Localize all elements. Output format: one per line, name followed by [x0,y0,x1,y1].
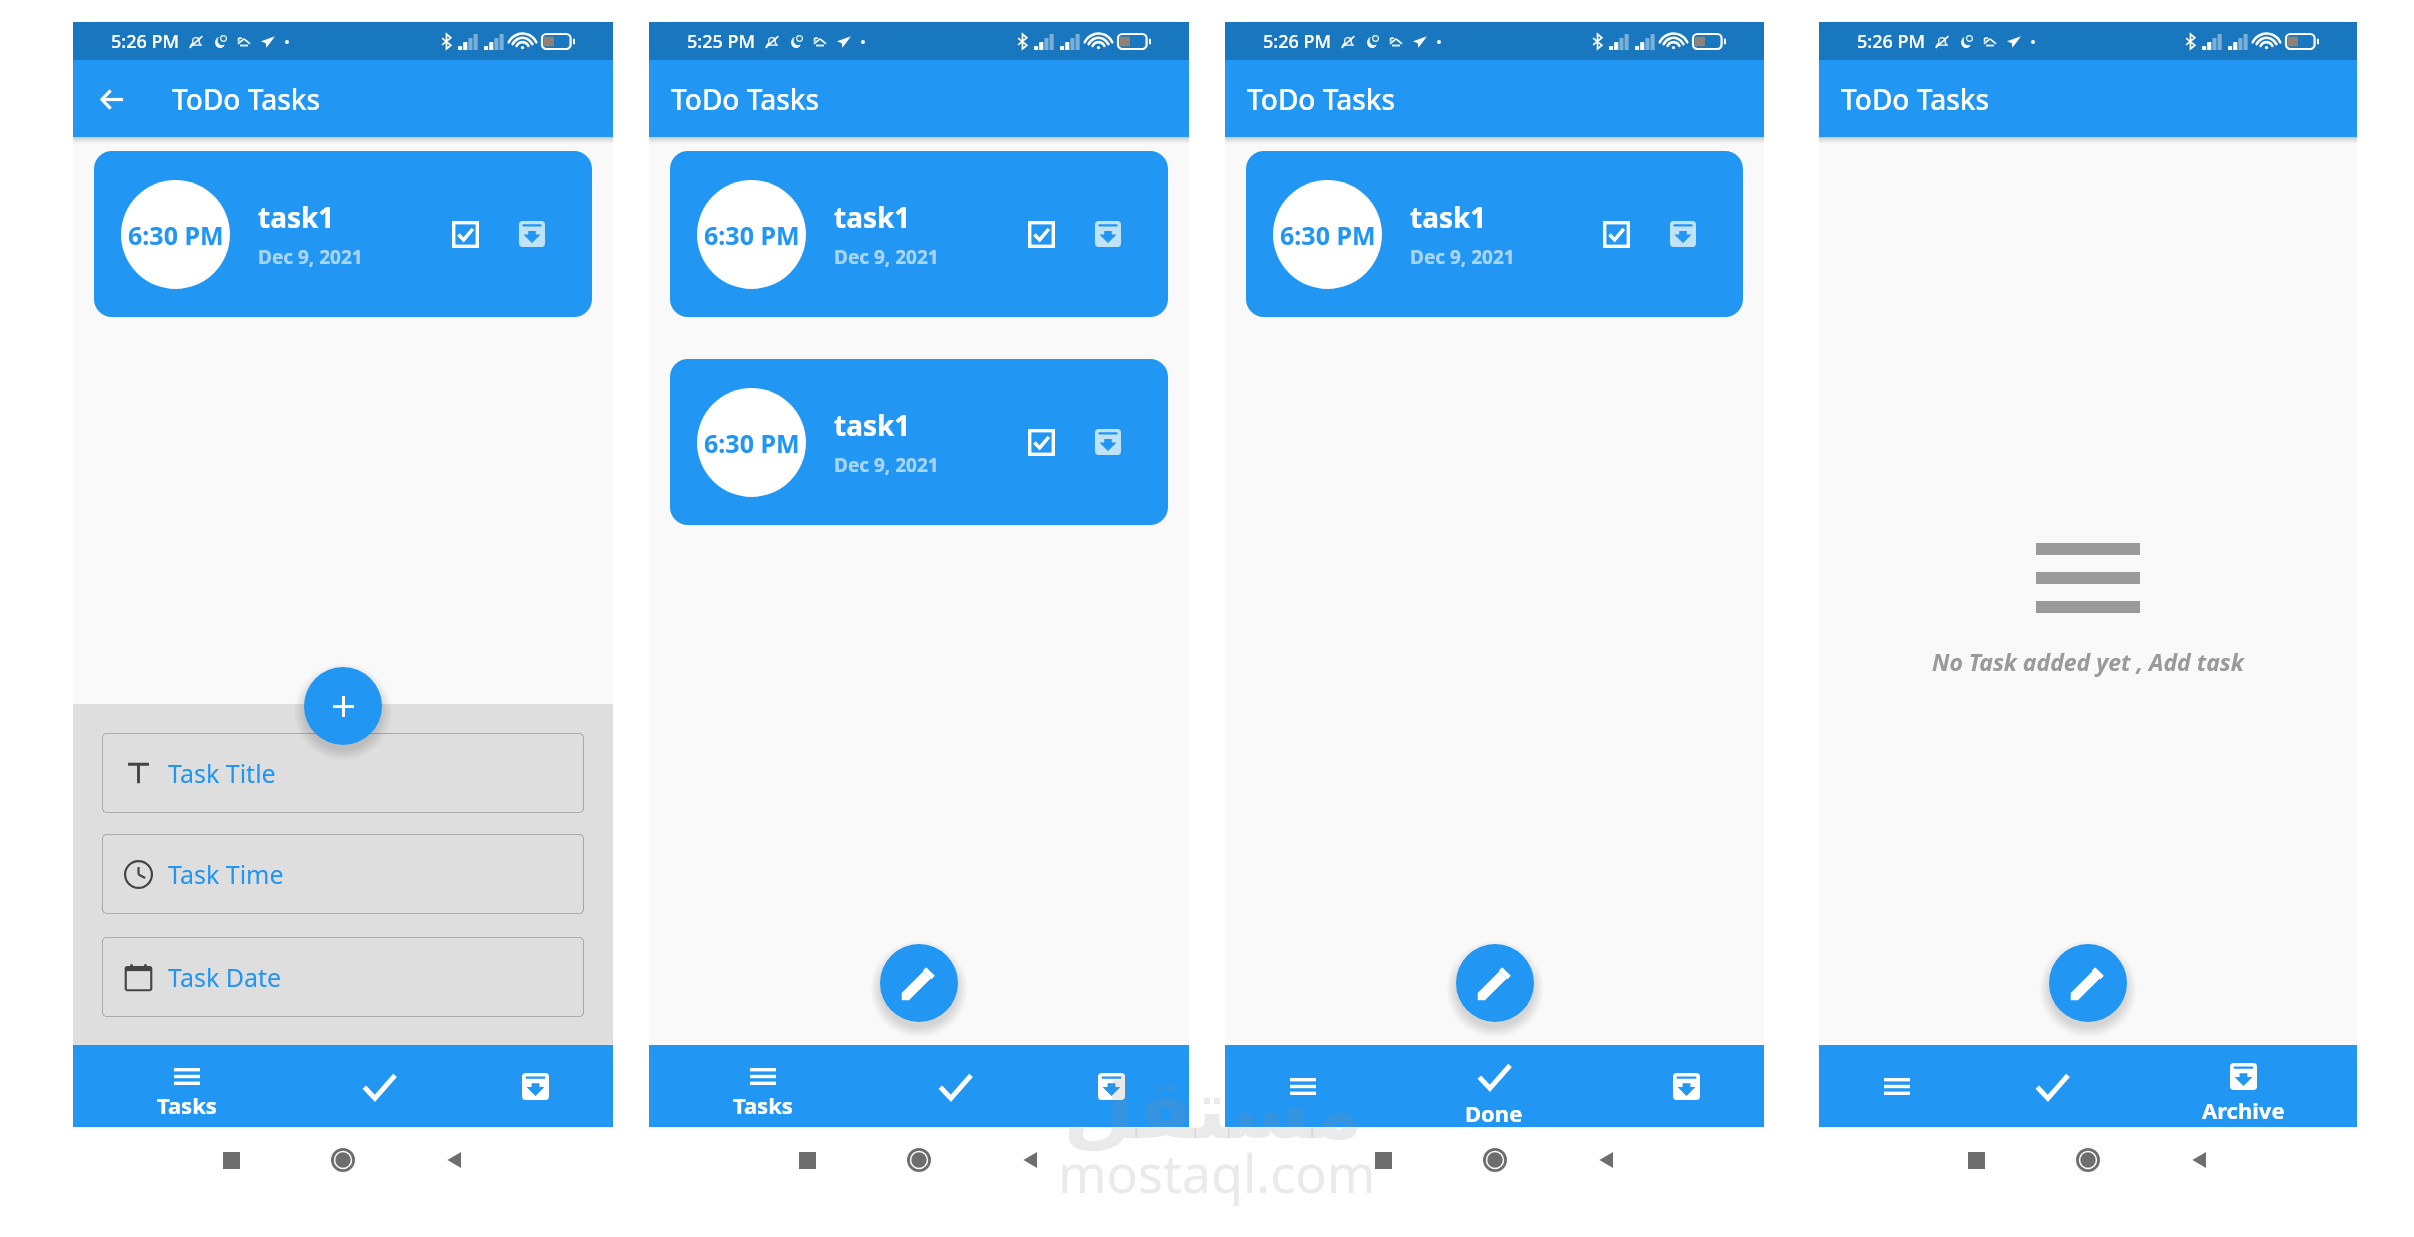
staticText: مستقل [1063,1062,1363,1157]
button[interactable]: Done [877,1045,1033,1127]
button[interactable]: 6:30 PM [670,359,1168,525]
button[interactable]: 6:30 PM [670,151,1168,317]
staticText: Dec 9, 2021 [834,244,939,270]
button[interactable]: 6:30 PM [94,151,592,317]
staticText: Dec 9, 2021 [258,244,363,270]
staticText: ToDo Tasks [172,80,321,118]
staticText: ToDo Tasks [1247,80,1396,118]
button[interactable]: Back [89,76,135,122]
staticText: Dec 9, 2021 [1410,244,1515,270]
button[interactable]: Archive [1608,1045,1764,1127]
staticText: task1 [1410,198,1487,236]
button[interactable]: Task Date [102,937,584,1017]
button[interactable]: Mark task done [1592,210,1640,258]
staticText: 5:26 PM [1263,29,1331,54]
staticText: Task Time [168,857,284,891]
staticText: 5:25 PM [687,29,755,54]
button[interactable]: Tasks [1225,1045,1380,1127]
button[interactable]: 6:30 PM [1246,151,1743,317]
staticText: No Task added yet , Add task [1932,646,2244,677]
button[interactable]: Archive [457,1045,613,1127]
button[interactable]: Mark task done [441,210,489,258]
staticText: ToDo Tasks [671,80,820,118]
button[interactable]: Mark task done [1017,210,1065,258]
staticText: task1 [258,198,335,236]
staticText: ToDo Tasks [1841,80,1990,118]
staticText: Task Title [168,756,276,790]
button[interactable]: Done [1380,1045,1608,1127]
button[interactable]: Archive task [1084,418,1132,466]
button[interactable]: Task Time [102,834,584,914]
button[interactable]: Add task [304,667,382,745]
button[interactable]: Done [1975,1045,2130,1127]
button[interactable]: Archive task [1659,210,1707,258]
button[interactable]: Archive task [1084,210,1132,258]
staticText: Tasks [157,1090,217,1120]
button[interactable]: Archive task [508,210,556,258]
staticText: mostaql.com [1058,1137,1376,1208]
staticText: 5:26 PM [111,29,179,54]
button[interactable]: Tasks [1819,1045,1975,1127]
button[interactable]: Tasks [73,1045,301,1127]
button[interactable]: Done [301,1045,457,1127]
staticText: 6:30 PM [704,218,800,252]
staticText: task1 [834,198,911,236]
staticText: Task Date [168,960,282,994]
button[interactable]: Edit task [1456,944,1534,1022]
staticText: Archive [2202,1095,2285,1125]
button[interactable]: Task Title [102,733,584,813]
button[interactable]: Archive [2130,1045,2357,1127]
staticText: Done [1465,1098,1523,1128]
button[interactable]: Archive [1033,1045,1189,1127]
button[interactable]: Mark task done [1017,418,1065,466]
staticText: Dec 9, 2021 [834,452,939,478]
button[interactable]: Edit task [880,944,958,1022]
button[interactable]: Tasks [649,1045,877,1127]
staticText: 6:30 PM [128,218,224,252]
button[interactable]: Edit task [2049,944,2127,1022]
staticText: 6:30 PM [1280,218,1376,252]
staticText: task1 [834,406,911,444]
staticText: 5:26 PM [1857,29,1925,54]
staticText: 6:30 PM [704,426,800,460]
staticText: Tasks [733,1090,793,1120]
